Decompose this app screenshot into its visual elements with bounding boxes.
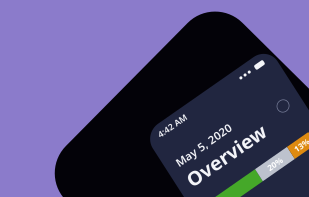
staticText: May 5, 2020 bbox=[30, 96, 199, 135]
staticText: Overview bbox=[30, 139, 268, 197]
